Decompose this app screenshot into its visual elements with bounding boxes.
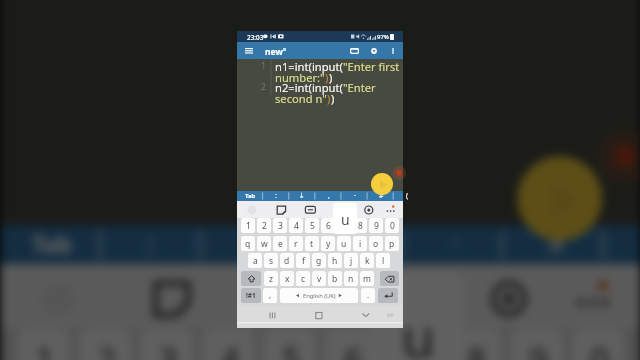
button[interactable]: , — [305, 226, 405, 264]
button[interactable]: v — [312, 271, 326, 286]
button[interactable]: 9 — [369, 218, 383, 233]
staticText: i — [359, 238, 362, 250]
button[interactable]: , — [316, 191, 342, 201]
staticText: 4 — [220, 337, 240, 360]
staticText: , — [328, 191, 330, 201]
button[interactable]: 4 — [201, 330, 255, 360]
button[interactable]: 1 — [16, 330, 70, 360]
staticText: f — [302, 255, 305, 267]
button[interactable]: q — [241, 236, 255, 251]
button[interactable]: ( — [606, 226, 640, 264]
button[interactable]: m — [360, 271, 374, 286]
button[interactable]: r — [289, 236, 303, 251]
staticText: 3 — [159, 337, 178, 360]
button[interactable]: , — [263, 288, 277, 303]
staticText: Tab — [32, 229, 74, 260]
button[interactable]: Shift — [241, 271, 261, 286]
staticText: English (UK) — [303, 292, 336, 300]
button[interactable]: 9 — [510, 330, 564, 360]
staticText: l — [382, 255, 385, 267]
button[interactable]: c — [296, 271, 310, 286]
staticText: e — [278, 238, 283, 250]
staticText: ) — [327, 91, 331, 106]
staticText: ( — [406, 191, 409, 201]
button[interactable]: 0 — [385, 218, 399, 233]
button[interactable]: e — [273, 236, 287, 251]
button[interactable]: 1 — [241, 218, 255, 233]
button[interactable]: Run — [517, 156, 602, 241]
staticText: b — [332, 273, 338, 285]
button[interactable]: p — [385, 236, 399, 251]
button[interactable]: f — [296, 253, 310, 268]
button[interactable]: g — [312, 253, 326, 268]
button[interactable]: Backspace — [380, 271, 399, 286]
button[interactable]: o — [369, 236, 383, 251]
staticText: c — [301, 273, 306, 285]
button[interactable]: 5 — [263, 330, 317, 360]
button[interactable]: y — [321, 236, 335, 251]
button[interactable]: 6 — [321, 218, 335, 233]
button[interactable]: : — [263, 191, 289, 201]
button[interactable]: 2 — [257, 218, 271, 233]
button[interactable]: 4 — [289, 218, 303, 233]
staticText: 7 — [342, 220, 347, 232]
button[interactable]: s — [264, 253, 278, 268]
staticText: 7 — [406, 337, 425, 360]
button[interactable]: u — [337, 236, 351, 251]
button[interactable]: ↓ — [201, 226, 301, 264]
button[interactable]: Run — [371, 173, 393, 195]
button[interactable]: 5 — [305, 218, 319, 233]
button[interactable]: ( — [394, 191, 420, 201]
button[interactable]: English (UK) — [280, 288, 358, 303]
button[interactable]: Open folder — [344, 44, 365, 58]
button[interactable]: d — [280, 253, 294, 268]
button[interactable]: 8 — [353, 218, 367, 233]
button[interactable]: 6 — [325, 330, 379, 360]
button[interactable]: Tab — [237, 191, 263, 201]
staticText: s — [269, 255, 274, 267]
button[interactable]: Find — [365, 44, 382, 58]
button[interactable]: b — [328, 271, 342, 286]
button[interactable]: n — [344, 271, 358, 286]
button[interactable]: Enter — [378, 288, 398, 303]
staticText: v — [317, 273, 322, 285]
button[interactable]: k — [360, 253, 374, 268]
button[interactable]: 7 — [386, 330, 440, 360]
button[interactable]: Tab — [1, 226, 101, 264]
button[interactable]: z — [264, 271, 278, 286]
button[interactable]: h — [328, 253, 342, 268]
button[interactable]: i — [353, 236, 367, 251]
button[interactable]: Menu — [239, 43, 258, 58]
button[interactable]: # — [506, 226, 606, 264]
button[interactable]: # — [368, 191, 394, 201]
button[interactable]: !#1 — [241, 288, 261, 303]
staticText: 8 — [467, 337, 487, 360]
button[interactable]: 3 — [273, 218, 287, 233]
button[interactable]: t — [305, 236, 319, 251]
button[interactable]: l — [376, 253, 390, 268]
button[interactable]: x — [280, 271, 294, 286]
button[interactable]: · — [342, 191, 368, 201]
button[interactable]: a — [248, 253, 262, 268]
staticText: j — [350, 255, 353, 267]
button[interactable]: . — [361, 288, 375, 303]
staticText: ↓ — [240, 229, 263, 260]
staticText: : — [147, 226, 155, 264]
staticText: ) — [331, 91, 335, 106]
staticText: ↓ — [299, 192, 305, 200]
button[interactable]: ↓ — [289, 191, 315, 201]
button[interactable]: j — [344, 253, 358, 268]
button[interactable]: 7 — [337, 218, 351, 233]
staticText: "Enter — [343, 80, 376, 95]
button[interactable]: 0 — [571, 330, 625, 360]
button[interactable]: 3 — [140, 330, 194, 360]
staticText: t — [310, 238, 314, 250]
button[interactable]: More options — [385, 44, 401, 58]
button[interactable]: 8 — [448, 330, 502, 360]
button[interactable]: 2 — [78, 330, 132, 360]
button[interactable]: : — [101, 226, 201, 264]
staticText: y — [326, 238, 331, 250]
button[interactable]: w — [257, 236, 271, 251]
staticText: 0 — [390, 220, 395, 232]
button[interactable]: · — [406, 226, 506, 264]
